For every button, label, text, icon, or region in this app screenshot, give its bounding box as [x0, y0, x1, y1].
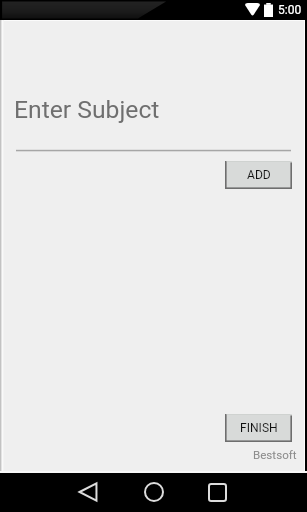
- button[interactable]: Enter Subject: [14, 95, 160, 124]
- button[interactable]: Back: [68, 473, 108, 511]
- button[interactable]: Home: [134, 473, 174, 511]
- button[interactable]: ADD: [225, 161, 292, 189]
- button[interactable]: Recent apps: [197, 473, 237, 511]
- button[interactable]: FINISH: [225, 414, 292, 442]
- staticText: FINISH: [240, 421, 278, 435]
- button[interactable]: Bestsoft: [253, 448, 297, 462]
- staticText: ADD: [247, 168, 271, 182]
- staticText: 5:00: [278, 3, 302, 17]
